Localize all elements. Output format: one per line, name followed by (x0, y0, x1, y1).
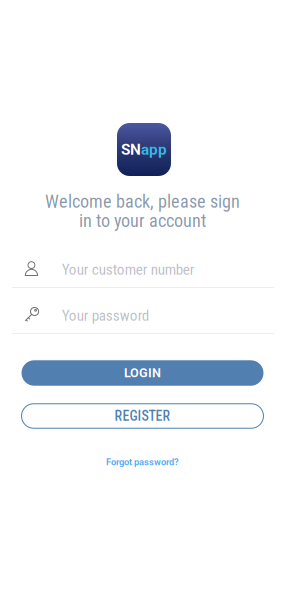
staticText: LOGIN (124, 366, 161, 380)
button[interactable]: LOGIN (21, 360, 263, 386)
staticText: Your customer number (62, 261, 195, 278)
staticText: SN (121, 140, 141, 158)
button[interactable]: REGISTER (21, 404, 263, 428)
staticText: Forgot password? (106, 456, 179, 467)
staticText: Your password (62, 307, 150, 324)
staticText: in to your account (79, 210, 206, 231)
staticText: Welcome back, please sign (45, 191, 240, 212)
button[interactable]: Forgot password? (106, 456, 179, 467)
staticText: app (141, 140, 167, 158)
staticText: REGISTER (114, 408, 170, 424)
